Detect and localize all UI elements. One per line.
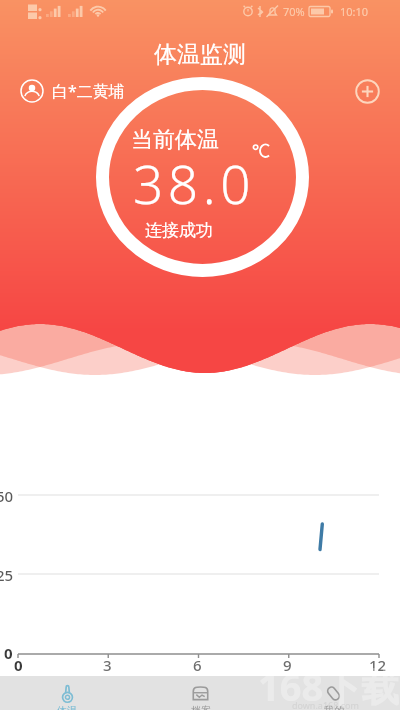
staticText: 我的 (324, 704, 344, 710)
staticText: 白*二黄埔 (52, 80, 125, 102)
staticText: 体温 (57, 704, 77, 710)
staticText: 3 (103, 655, 112, 675)
button[interactable]: 我的 (267, 676, 400, 710)
staticText: 当前体温 (131, 126, 219, 154)
staticText: 连接成功 (145, 220, 213, 241)
staticText: 12 (369, 655, 387, 675)
staticText: 50 (0, 486, 14, 506)
staticText: 9 (283, 655, 292, 675)
staticText: 38.0 (133, 147, 256, 219)
staticText: 体温监测 (0, 40, 400, 69)
staticText: 168下载 (258, 660, 400, 710)
button[interactable]: Add device (355, 79, 380, 104)
staticText: 70% (283, 4, 305, 19)
staticText: 档案 (191, 704, 211, 710)
staticText: 0 (14, 655, 23, 675)
staticText: 6 (193, 655, 202, 675)
button[interactable]: 档案 (134, 676, 267, 710)
staticText: 25 (0, 565, 14, 585)
staticText: 0 (4, 643, 13, 663)
staticText: 10:10 (340, 4, 369, 19)
button[interactable]: 白*二黄埔 (20, 79, 125, 103)
staticText: down.a168.com (292, 699, 359, 710)
button[interactable]: 体温 (0, 676, 134, 710)
